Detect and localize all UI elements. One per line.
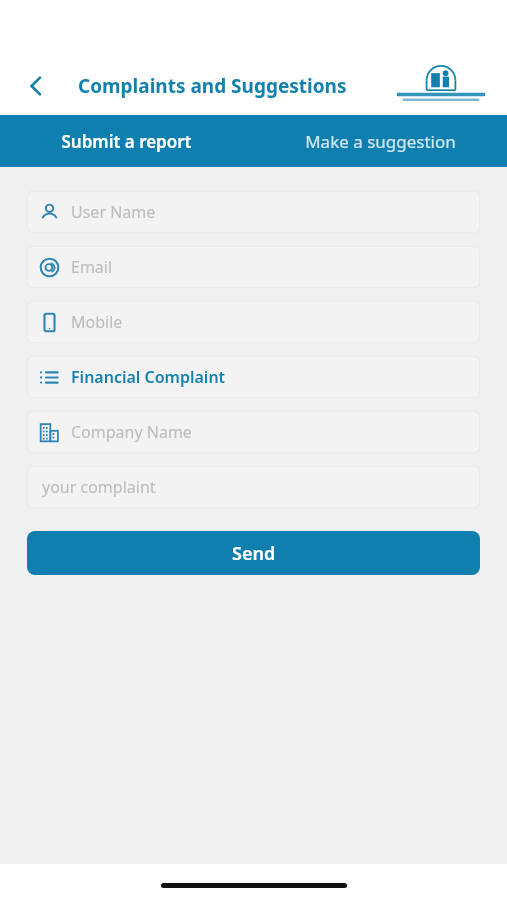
button[interactable]: Email xyxy=(27,246,480,288)
button[interactable]: Financial Complaint xyxy=(27,356,480,398)
button[interactable]: Submit a report xyxy=(0,115,253,167)
staticText: Email xyxy=(71,256,113,278)
button[interactable]: Mobile xyxy=(27,301,480,343)
button[interactable]: Make a suggestion xyxy=(253,115,507,167)
staticText: Complaints and Suggestions xyxy=(78,73,347,99)
staticText: Make a suggestion xyxy=(305,130,456,153)
staticText: Send xyxy=(232,541,276,566)
staticText: Submit a report xyxy=(61,130,192,153)
staticText: your complaint xyxy=(42,476,156,498)
staticText: Mobile xyxy=(71,311,123,333)
button[interactable]: Send xyxy=(27,531,480,575)
staticText: Financial Complaint xyxy=(71,366,226,388)
button[interactable]: Back xyxy=(14,64,58,108)
button[interactable]: Company Name xyxy=(27,411,480,453)
button[interactable]: User Name xyxy=(27,191,480,233)
staticText: User Name xyxy=(71,201,156,223)
staticText: Company Name xyxy=(71,421,192,443)
button[interactable]: your complaint xyxy=(27,466,480,508)
